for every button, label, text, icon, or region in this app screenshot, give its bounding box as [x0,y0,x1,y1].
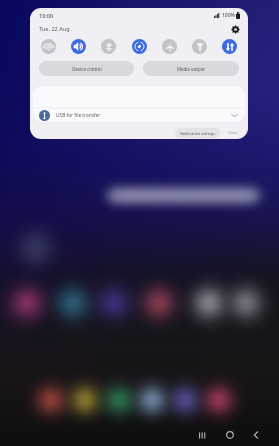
button[interactable]: Flashlight [192,39,207,54]
staticText: Media output [177,66,205,72]
staticText: Notification settings [180,131,215,136]
button[interactable]: Clear [225,128,241,137]
button[interactable]: USB for file transfer [33,86,245,122]
button[interactable]: Home [216,421,244,446]
button[interactable]: Back [242,421,270,446]
button[interactable]: Settings [229,23,241,35]
button[interactable]: Bluetooth [101,39,116,54]
staticText: Device control [72,66,102,72]
button[interactable]: Media output [143,61,239,76]
button[interactable]: Wi-Fi [41,39,56,54]
staticText: 100% [222,12,235,19]
staticText: USB for file transfer [56,112,101,119]
button[interactable]: Mobile data [222,39,237,54]
button[interactable]: Notification settings [175,128,220,138]
staticText: Clear [228,130,238,135]
button[interactable]: Airplane mode [162,39,177,54]
staticText: Tue, 22 Aug [39,25,70,33]
button[interactable]: Recents [188,421,216,446]
button[interactable]: Auto rotate [132,39,147,54]
button[interactable]: Device control [39,61,134,76]
staticText: 10:00 [39,12,54,19]
button[interactable]: Sound [71,39,86,54]
